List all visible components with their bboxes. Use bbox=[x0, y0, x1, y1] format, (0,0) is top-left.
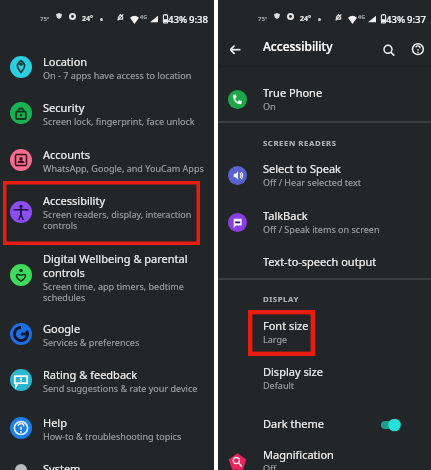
button[interactable]: Security bbox=[0, 100, 214, 146]
staticText: Accessibility bbox=[263, 38, 333, 54]
staticText: Location bbox=[43, 54, 88, 69]
staticText: 75° bbox=[40, 15, 50, 23]
button[interactable]: Font size bbox=[218, 318, 431, 362]
staticText: 24° bbox=[300, 14, 311, 24]
button[interactable]: Display size bbox=[218, 364, 431, 408]
staticText: 24° bbox=[82, 14, 93, 24]
staticText: Help bbox=[43, 415, 67, 430]
button[interactable]: System bbox=[0, 461, 214, 470]
button[interactable]: Digital Wellbeing & parental controls bbox=[0, 251, 214, 319]
staticText: On bbox=[263, 100, 276, 112]
staticText: TalkBack bbox=[263, 208, 308, 223]
staticText: Screen readers, display, interaction con… bbox=[43, 208, 212, 232]
staticText: 43% bbox=[168, 13, 188, 26]
staticText: How-to & troubleshooting topics bbox=[43, 430, 182, 442]
staticText: Large bbox=[263, 333, 288, 345]
staticText: Magnification bbox=[263, 447, 334, 462]
staticText: Off / Hear selected text bbox=[263, 176, 362, 188]
button[interactable]: Back bbox=[226, 38, 248, 60]
staticText: Google bbox=[43, 321, 81, 336]
button[interactable]: Magnification bbox=[218, 447, 431, 470]
button[interactable]: Google bbox=[0, 321, 214, 367]
staticText: Rating & feedback bbox=[43, 367, 138, 382]
button[interactable]: Search bbox=[376, 37, 400, 61]
button[interactable]: Select to Speak bbox=[218, 161, 431, 205]
staticText: Display size bbox=[263, 364, 323, 379]
button[interactable]: Dark theme toggle bbox=[381, 418, 402, 432]
staticText: On - 7 apps have access to location bbox=[43, 69, 192, 81]
staticText: 4G bbox=[140, 13, 148, 20]
staticText: Send suggestions & rate your device bbox=[43, 382, 198, 394]
staticText: 4G bbox=[358, 13, 366, 20]
button[interactable]: Accessibility bbox=[0, 193, 214, 249]
staticText: 43% bbox=[386, 13, 406, 26]
button[interactable]: Text-to-speech output bbox=[218, 247, 431, 277]
button[interactable]: True Phone bbox=[218, 85, 431, 129]
staticText: Screen lock, fingerprint, face unlock bbox=[43, 115, 195, 127]
staticText: 9:37 bbox=[407, 13, 427, 26]
button[interactable]: Accounts bbox=[0, 147, 214, 193]
staticText: Services & preferences bbox=[43, 336, 140, 348]
staticText: Off / Speak items on screen bbox=[263, 223, 380, 235]
staticText: 75° bbox=[258, 15, 268, 23]
button[interactable]: Location bbox=[0, 54, 214, 100]
staticText: Accessibility bbox=[43, 193, 106, 208]
staticText: WhatsApp, Google, and YouCam Apps bbox=[43, 162, 204, 174]
staticText: Text-to-speech output bbox=[263, 254, 377, 269]
staticText: SCREEN READERS bbox=[263, 138, 337, 149]
staticText: Dark theme bbox=[263, 416, 324, 431]
button[interactable]: Dark theme bbox=[218, 409, 431, 439]
button[interactable]: TalkBack bbox=[218, 208, 431, 252]
staticText: Off bbox=[263, 462, 277, 470]
staticText: System bbox=[43, 461, 81, 470]
button[interactable]: Help bbox=[406, 37, 430, 61]
staticText: True Phone bbox=[263, 85, 323, 100]
staticText: Default bbox=[263, 379, 295, 391]
button[interactable]: Help bbox=[0, 415, 214, 461]
staticText: DISPLAY bbox=[263, 294, 299, 305]
staticText: 9:38 bbox=[189, 13, 209, 26]
staticText: Screen time, app timers, bedtime schedul… bbox=[43, 280, 212, 304]
staticText: Select to Speak bbox=[263, 161, 341, 176]
staticText: Digital Wellbeing & parental controls bbox=[43, 251, 212, 280]
staticText: Security bbox=[43, 100, 85, 115]
button[interactable]: Rating & feedback bbox=[0, 367, 214, 413]
staticText: Accounts bbox=[43, 147, 91, 162]
staticText: Font size bbox=[263, 318, 309, 333]
